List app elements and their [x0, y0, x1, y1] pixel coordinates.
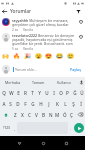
staticText: I	[53, 90, 55, 96]
staticText: Yorumlar	[10, 8, 32, 15]
button[interactable]: Sad	[66, 52, 74, 60]
staticText: ?123	[3, 126, 10, 130]
staticText: 5 sa Yanıtla	[12, 47, 33, 51]
staticText: 🙌	[2, 53, 9, 60]
staticText: 🔥	[13, 53, 20, 60]
staticText: Kullanıcı	[57, 80, 72, 85]
button[interactable]: Laughing	[55, 52, 63, 60]
staticText: N	[49, 112, 53, 118]
button[interactable]: N	[47, 109, 54, 120]
button[interactable]: Period	[68, 122, 73, 134]
staticText: J	[48, 101, 50, 107]
staticText: 😮	[35, 53, 42, 60]
button[interactable]: V	[33, 109, 40, 120]
button[interactable]: İ	[77, 98, 85, 109]
button[interactable]: Party	[23, 52, 31, 60]
staticText: Tamam	[32, 80, 45, 85]
button[interactable]: Ü	[78, 87, 85, 98]
button[interactable]: Heart eyes	[44, 52, 52, 60]
staticText: Ö	[63, 112, 67, 118]
button[interactable]: Surprised	[34, 52, 42, 60]
button[interactable]: U	[43, 87, 50, 98]
button[interactable]: B	[40, 109, 47, 120]
button[interactable]: Tamam	[25, 77, 51, 87]
button[interactable]: I	[50, 87, 57, 98]
button[interactable]: M	[54, 109, 61, 120]
staticText: Merhaba	[5, 80, 21, 85]
button[interactable]: R	[22, 87, 29, 98]
staticText: M	[55, 112, 60, 118]
button[interactable]: Raising hands	[1, 52, 9, 60]
button[interactable]: P	[64, 87, 71, 98]
button[interactable]: D	[14, 98, 21, 109]
button[interactable]: Back	[14, 138, 24, 148]
button[interactable]: G	[29, 98, 37, 109]
button[interactable]: Ç	[68, 109, 75, 120]
button[interactable]: Ö	[61, 109, 68, 120]
button[interactable]: Home	[38, 138, 48, 148]
staticText: Paylaş	[70, 67, 81, 72]
staticText: 😢	[67, 53, 74, 60]
staticText: R	[24, 90, 27, 96]
button[interactable]: Send	[74, 123, 84, 133]
button[interactable]: Like	[78, 19, 83, 24]
staticText: F	[24, 101, 27, 107]
button[interactable]: Recents	[61, 138, 71, 148]
staticText: ,	[14, 126, 16, 131]
button[interactable]: Merhaba	[0, 77, 25, 87]
button[interactable]: F	[21, 98, 29, 109]
staticText: B	[42, 112, 46, 118]
button[interactable]: Filter	[74, 7, 83, 16]
staticText: Q	[2, 90, 6, 96]
button[interactable]: Q	[0, 87, 8, 98]
button[interactable]: C	[26, 109, 33, 120]
staticText: 😍	[45, 53, 52, 60]
button[interactable]: Ş	[69, 98, 77, 109]
staticText: W	[9, 90, 14, 96]
staticText: Y	[38, 90, 41, 96]
staticText: L	[64, 101, 67, 107]
button[interactable]: K	[53, 98, 61, 109]
staticText: K	[56, 101, 59, 107]
button[interactable]: Voice input	[77, 77, 85, 87]
staticText: Ü	[80, 90, 84, 96]
button[interactable]: H	[37, 98, 45, 109]
button[interactable]: T	[29, 87, 36, 98]
button[interactable]: tesselator2222 Benzersiz bir deneyim yaş…	[0, 33, 85, 51]
button[interactable]: E	[15, 87, 22, 98]
button[interactable]: Z	[11, 109, 19, 120]
staticText: C	[28, 112, 31, 118]
staticText: 😂	[56, 53, 63, 60]
staticText: Z	[14, 112, 17, 118]
staticText: X	[21, 112, 24, 118]
button[interactable]: X	[19, 109, 26, 120]
staticText: Yorum ekle…	[15, 67, 68, 72]
staticText: A	[2, 101, 6, 107]
staticText: H	[39, 101, 43, 107]
button[interactable]: seyyahhh Muhteşem bir manzara, gerçekten…	[0, 18, 85, 32]
button[interactable]: Ğ	[71, 87, 78, 98]
staticText: 🎉	[24, 53, 31, 60]
button[interactable]: Y	[36, 87, 43, 98]
button[interactable]: Like	[78, 34, 83, 39]
staticText: V	[35, 112, 38, 118]
button[interactable]: Comma	[12, 122, 17, 134]
button[interactable]: A	[0, 98, 7, 109]
button[interactable]: ?123	[1, 122, 12, 134]
button[interactable]: Back	[0, 7, 9, 16]
button[interactable]: Kullanıcı	[51, 77, 77, 87]
button[interactable]: J	[45, 98, 53, 109]
button[interactable]: Backspace	[75, 109, 85, 120]
button[interactable]: L	[61, 98, 69, 109]
button[interactable]: Paylaş	[68, 66, 83, 73]
button[interactable]: Fire	[12, 52, 20, 60]
button[interactable]: S	[7, 98, 14, 109]
staticText: .	[70, 126, 72, 131]
button[interactable]: O	[57, 87, 64, 98]
staticText: Ğ	[73, 90, 77, 96]
button[interactable]: Shift	[0, 109, 11, 120]
button[interactable]: W	[8, 87, 15, 98]
staticText: G	[31, 101, 35, 107]
staticText: tesselator2222 Benzersiz bir deneyim yaş…	[12, 33, 77, 46]
